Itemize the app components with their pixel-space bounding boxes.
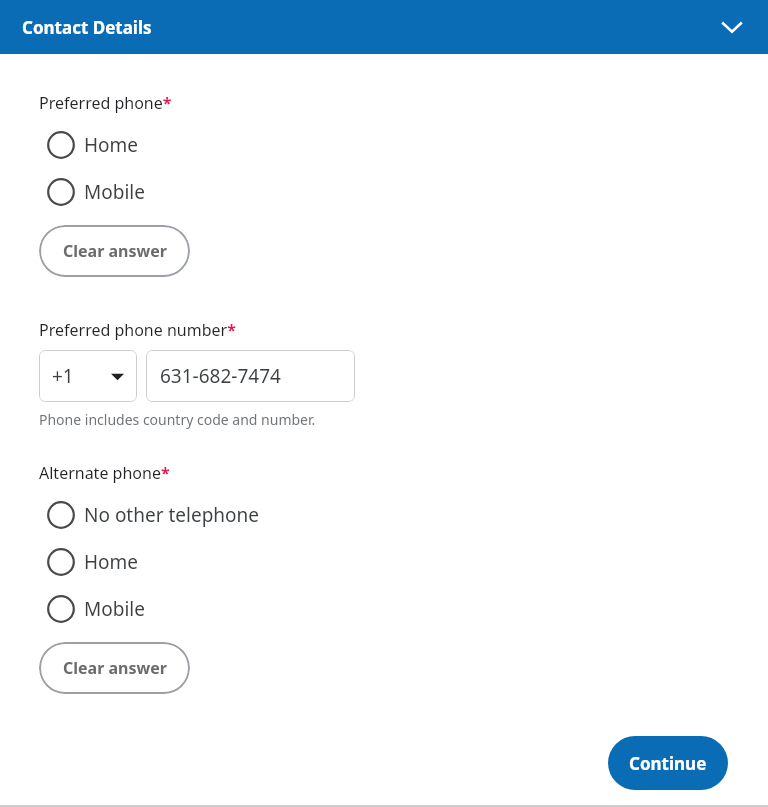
staticText: Preferred phone number* bbox=[39, 319, 236, 341]
staticText: Clear answer bbox=[63, 657, 167, 679]
staticText: Alternate phone* bbox=[39, 462, 170, 484]
button[interactable]: Continue bbox=[608, 736, 728, 790]
staticText: Mobile bbox=[84, 179, 145, 205]
button[interactable]: Mobile bbox=[39, 168, 744, 215]
button[interactable]: No other telephone bbox=[39, 491, 744, 538]
staticText: 631-682-7474 bbox=[160, 363, 281, 389]
staticText: Home bbox=[84, 549, 139, 575]
button[interactable]: +1 bbox=[39, 350, 137, 402]
button[interactable]: Mobile bbox=[39, 585, 744, 632]
staticText: Mobile bbox=[84, 596, 145, 622]
staticText: Preferred phone* bbox=[39, 92, 172, 114]
button[interactable]: Contact Details bbox=[0, 0, 768, 54]
button[interactable]: Home bbox=[39, 121, 744, 168]
staticText: Clear answer bbox=[63, 240, 167, 262]
button[interactable]: Clear answer bbox=[39, 642, 190, 694]
staticText: No other telephone bbox=[84, 502, 260, 528]
button[interactable]: Collapse section bbox=[714, 9, 750, 45]
button[interactable]: Home bbox=[39, 538, 744, 585]
staticText: Home bbox=[84, 132, 139, 158]
button[interactable]: Clear answer bbox=[39, 225, 190, 277]
button[interactable]: 631-682-7474 bbox=[146, 350, 355, 402]
staticText: Contact Details bbox=[22, 16, 152, 39]
staticText: +1 bbox=[52, 363, 74, 389]
staticText: Continue bbox=[629, 752, 707, 775]
staticText: Phone includes country code and number. bbox=[39, 410, 316, 429]
